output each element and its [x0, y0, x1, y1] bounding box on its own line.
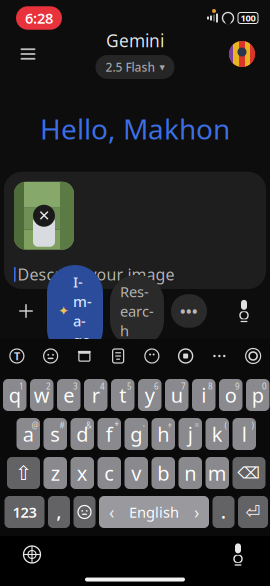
button[interactable]: n — [178, 457, 202, 489]
staticText: 123 — [12, 502, 36, 522]
button[interactable]: p — [246, 379, 269, 411]
button[interactable]: Voice input — [230, 296, 258, 326]
button[interactable]: a — [16, 418, 40, 450]
staticText: Describe your image — [18, 264, 175, 285]
staticText: English — [129, 502, 179, 522]
button[interactable]: Emoji — [34, 340, 68, 372]
staticText: c — [104, 460, 114, 486]
staticText: . — [221, 500, 226, 523]
staticText: 6 — [154, 381, 159, 392]
staticText: ✕ — [38, 207, 50, 224]
staticText: Image — [73, 272, 92, 350]
staticText: k — [212, 421, 223, 447]
button[interactable]: Period — [212, 496, 234, 528]
staticText: @ — [31, 420, 38, 431]
button[interactable]: o — [219, 379, 242, 411]
staticText: 2 — [46, 381, 51, 392]
button[interactable]: r — [84, 379, 107, 411]
staticText: ⏎ — [245, 502, 260, 522]
staticText: ‹ — [109, 500, 114, 523]
staticText: ( — [224, 420, 226, 431]
staticText: z — [51, 460, 60, 486]
staticText: , — [56, 500, 61, 523]
staticText: = — [194, 420, 199, 431]
button[interactable]: c — [97, 457, 121, 489]
staticText: 4 — [100, 381, 105, 392]
button[interactable]: f — [97, 418, 121, 450]
button[interactable]: Store — [67, 340, 101, 372]
staticText: Gemini — [106, 29, 164, 52]
button[interactable]: Add — [12, 296, 40, 326]
button[interactable]: w — [30, 379, 53, 411]
button[interactable]: Switch keyboard — [12, 539, 52, 569]
button[interactable]: Space, English — [99, 496, 209, 528]
staticText: l — [242, 421, 247, 447]
button[interactable]: Account — [222, 34, 262, 74]
staticText: x — [77, 460, 88, 486]
button[interactable]: Comma — [48, 496, 70, 528]
button[interactable]: Dictation — [218, 539, 258, 569]
staticText: u — [171, 382, 183, 408]
staticText: r — [92, 382, 100, 408]
button[interactable]: z — [43, 457, 67, 489]
staticText: 0 — [262, 381, 267, 392]
button[interactable]: l — [232, 418, 256, 450]
staticText: f — [106, 421, 113, 447]
button[interactable]: g — [124, 418, 148, 450]
button[interactable]: Research — [110, 275, 164, 347]
button[interactable]: Voice typing — [0, 340, 34, 372]
button[interactable]: 123 — [4, 496, 44, 528]
button[interactable]: m — [205, 457, 229, 489]
staticText: + — [167, 420, 172, 431]
staticText: ✦ — [58, 303, 69, 318]
button[interactable]: k — [205, 418, 229, 450]
staticText: Hello, Makhon — [40, 110, 230, 147]
button[interactable]: 2.5 Flash — [95, 55, 174, 79]
staticText: h — [157, 421, 169, 447]
button[interactable]: h — [151, 418, 175, 450]
staticText: 5 — [127, 381, 132, 392]
button[interactable]: Emoji — [73, 496, 95, 528]
button[interactable]: x — [70, 457, 94, 489]
staticText: p — [252, 382, 264, 408]
button[interactable]: Themes — [135, 340, 169, 372]
staticText: & — [86, 420, 92, 431]
staticText: g — [130, 421, 142, 447]
staticText: i — [201, 382, 206, 408]
button[interactable]: q — [3, 379, 26, 411]
button[interactable]: Menu — [8, 34, 48, 74]
button[interactable]: d — [70, 418, 94, 450]
staticText: m — [208, 460, 227, 486]
button[interactable]: v — [124, 457, 148, 489]
staticText: n — [184, 460, 196, 486]
staticText: 7 — [181, 381, 186, 392]
staticText: w — [34, 382, 50, 408]
button[interactable]: ✦ — [47, 265, 103, 357]
staticText: # — [59, 420, 64, 431]
button[interactable]: i — [192, 379, 215, 411]
button[interactable]: More — [202, 340, 236, 372]
button[interactable]: GIF — [169, 340, 203, 372]
staticText: e — [63, 382, 74, 408]
staticText: v — [131, 460, 141, 486]
button[interactable]: j — [178, 418, 202, 450]
button[interactable]: y — [138, 379, 161, 411]
staticText: y — [145, 382, 155, 408]
button[interactable]: Shift — [7, 457, 40, 489]
button[interactable]: b — [151, 457, 175, 489]
button[interactable]: e — [57, 379, 80, 411]
button[interactable]: Return — [238, 496, 268, 528]
button[interactable]: s — [43, 418, 67, 450]
button[interactable]: Clipboard — [101, 340, 135, 372]
staticText: ⇧ — [15, 462, 32, 484]
button[interactable]: More options — [171, 294, 207, 328]
staticText: 8 — [208, 381, 213, 392]
button[interactable]: Remove image — [33, 205, 55, 227]
staticText: b — [157, 460, 169, 486]
staticText: 1 — [19, 381, 24, 392]
button[interactable]: Settings — [236, 340, 270, 372]
button[interactable]: u — [165, 379, 188, 411]
staticText: 6:28 — [25, 8, 53, 28]
button[interactable]: Backspace — [232, 457, 265, 489]
button[interactable]: t — [111, 379, 134, 411]
